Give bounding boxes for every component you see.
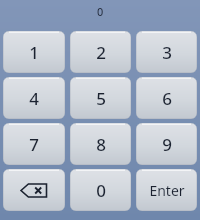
staticText: 4	[29, 87, 39, 110]
staticText: 0	[97, 4, 104, 19]
button[interactable]: 4	[3, 77, 65, 119]
staticText: 1	[29, 41, 39, 64]
staticText: 7	[29, 133, 39, 156]
staticText: 9	[162, 133, 172, 156]
staticText: 3	[162, 41, 172, 64]
staticText: 8	[96, 133, 106, 156]
button[interactable]: 8	[70, 123, 131, 165]
staticText: 5	[96, 87, 106, 110]
button[interactable]: 5	[70, 77, 131, 119]
staticText: 0	[96, 179, 106, 202]
button[interactable]: 1	[3, 31, 65, 73]
button[interactable]: Enter	[136, 169, 197, 211]
staticText: 2	[96, 41, 106, 64]
button[interactable]: 0	[70, 169, 131, 211]
button[interactable]: 3	[136, 31, 197, 73]
staticText: 6	[162, 87, 172, 110]
button[interactable]: 2	[70, 31, 131, 73]
button[interactable]: 7	[3, 123, 65, 165]
button[interactable]: Backspace	[3, 169, 65, 211]
staticText: Enter	[149, 181, 185, 200]
button[interactable]: 9	[136, 123, 197, 165]
button[interactable]: 6	[136, 77, 197, 119]
